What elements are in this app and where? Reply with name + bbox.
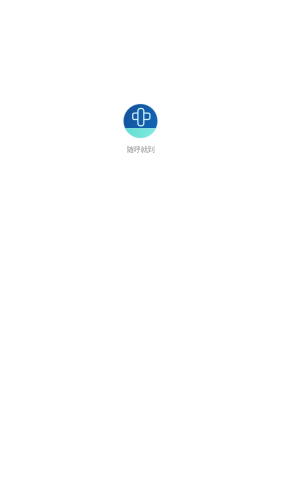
staticText: 随呼就到 bbox=[126, 145, 154, 154]
